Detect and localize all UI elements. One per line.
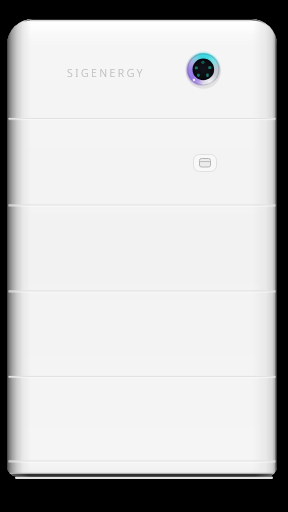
staticText: SIGENERGY: [67, 66, 145, 80]
button[interactable]: [185, 51, 222, 88]
button[interactable]: [193, 154, 217, 172]
